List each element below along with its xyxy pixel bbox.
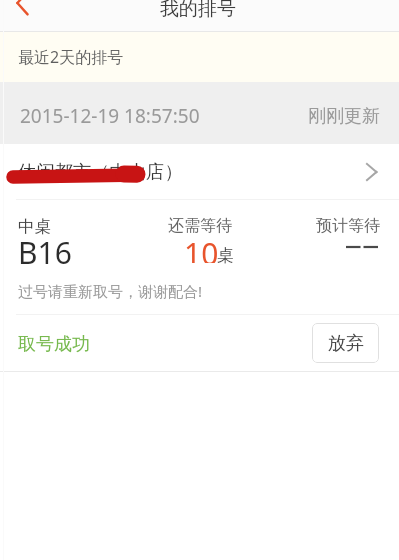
staticText: 还需等待 <box>168 216 232 236</box>
staticText: 刚刚更新 <box>308 105 380 128</box>
button[interactable]: 放弃 <box>312 323 379 363</box>
staticText: 休闲都市（中山店） <box>18 160 183 183</box>
staticText: 取号成功 <box>18 333 90 356</box>
button[interactable]: 休闲都市（中山店） <box>0 144 399 199</box>
staticText: 预计等待 <box>316 216 380 236</box>
staticText: 10 <box>184 233 219 263</box>
button[interactable]: Back <box>0 0 46 31</box>
staticText: 中桌 <box>18 216 51 237</box>
staticText: 我的排号 <box>160 0 236 21</box>
staticText: 放弃 <box>328 332 364 355</box>
staticText: B16 <box>18 232 72 273</box>
staticText: 桌 <box>217 245 234 266</box>
staticText: 2015-12-19 18:57:50 <box>20 103 200 129</box>
staticText: 最近2天的排号 <box>18 46 124 68</box>
staticText: 过号请重新取号，谢谢配合! <box>18 281 203 301</box>
